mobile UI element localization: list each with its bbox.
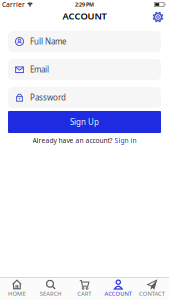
staticText: Sign Up	[70, 117, 99, 127]
staticText: SEARCH	[18, 282, 84, 300]
button[interactable]: Password	[8, 87, 161, 108]
staticText: 2:29 PM	[75, 1, 94, 8]
button[interactable]: CART	[68, 279, 101, 296]
button[interactable]: Email	[8, 59, 161, 80]
button[interactable]: Settings	[152, 10, 169, 22]
staticText: Email	[30, 64, 49, 75]
button[interactable]: Sign in	[114, 136, 136, 145]
staticText: ACCOUNT	[77, 282, 160, 300]
staticText: HOME	[0, 282, 43, 300]
staticText: ACCOUNT	[62, 10, 106, 22]
button[interactable]: SEARCH	[34, 279, 68, 296]
button[interactable]: Sign Up	[8, 111, 161, 133]
staticText: Carrier	[2, 0, 25, 9]
staticText: Already have an account?	[32, 136, 112, 145]
staticText: Full Name	[30, 36, 67, 47]
staticText: CONTACT	[113, 282, 169, 300]
button[interactable]: ACCOUNT	[101, 279, 135, 296]
staticText: Password	[30, 92, 66, 103]
button[interactable]: Full Name	[8, 31, 161, 52]
staticText: Sign in	[114, 136, 136, 145]
button[interactable]: HOME	[0, 279, 34, 296]
button[interactable]: CONTACT	[135, 279, 169, 296]
staticText: CART	[63, 282, 106, 300]
